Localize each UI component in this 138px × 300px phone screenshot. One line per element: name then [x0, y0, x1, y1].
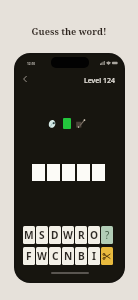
button[interactable]: F — [23, 247, 35, 265]
staticText: Level 124 — [84, 76, 116, 86]
button[interactable]: N — [62, 247, 74, 265]
staticText: Guess the word! — [0, 25, 138, 38]
staticText: F — [26, 249, 32, 263]
staticText: M — [24, 228, 34, 242]
button[interactable]: S — [36, 226, 48, 244]
button[interactable]: O — [88, 226, 100, 244]
staticText: 12:10 — [27, 62, 36, 66]
button[interactable]: W — [62, 226, 74, 244]
button[interactable]: Hint — [101, 226, 113, 244]
staticText: B — [78, 249, 85, 263]
staticText: S — [39, 228, 45, 242]
staticText: W — [37, 249, 47, 263]
button[interactable]: Back — [18, 72, 32, 86]
staticText: N — [64, 249, 73, 263]
button[interactable]: W — [36, 247, 48, 265]
button[interactable]: D — [49, 226, 61, 244]
button[interactable]: R — [75, 226, 87, 244]
staticText: D — [51, 228, 59, 242]
staticText: R — [78, 228, 85, 242]
staticText: O — [90, 228, 99, 242]
staticText: ? — [105, 228, 110, 242]
button[interactable]: Shuffle — [101, 247, 113, 265]
button[interactable]: M — [23, 226, 35, 244]
staticText: I — [92, 249, 96, 263]
button[interactable]: B — [75, 247, 87, 265]
staticText: C — [52, 249, 59, 263]
button[interactable]: I — [88, 247, 100, 265]
staticText: W — [63, 228, 73, 242]
button[interactable]: C — [49, 247, 61, 265]
